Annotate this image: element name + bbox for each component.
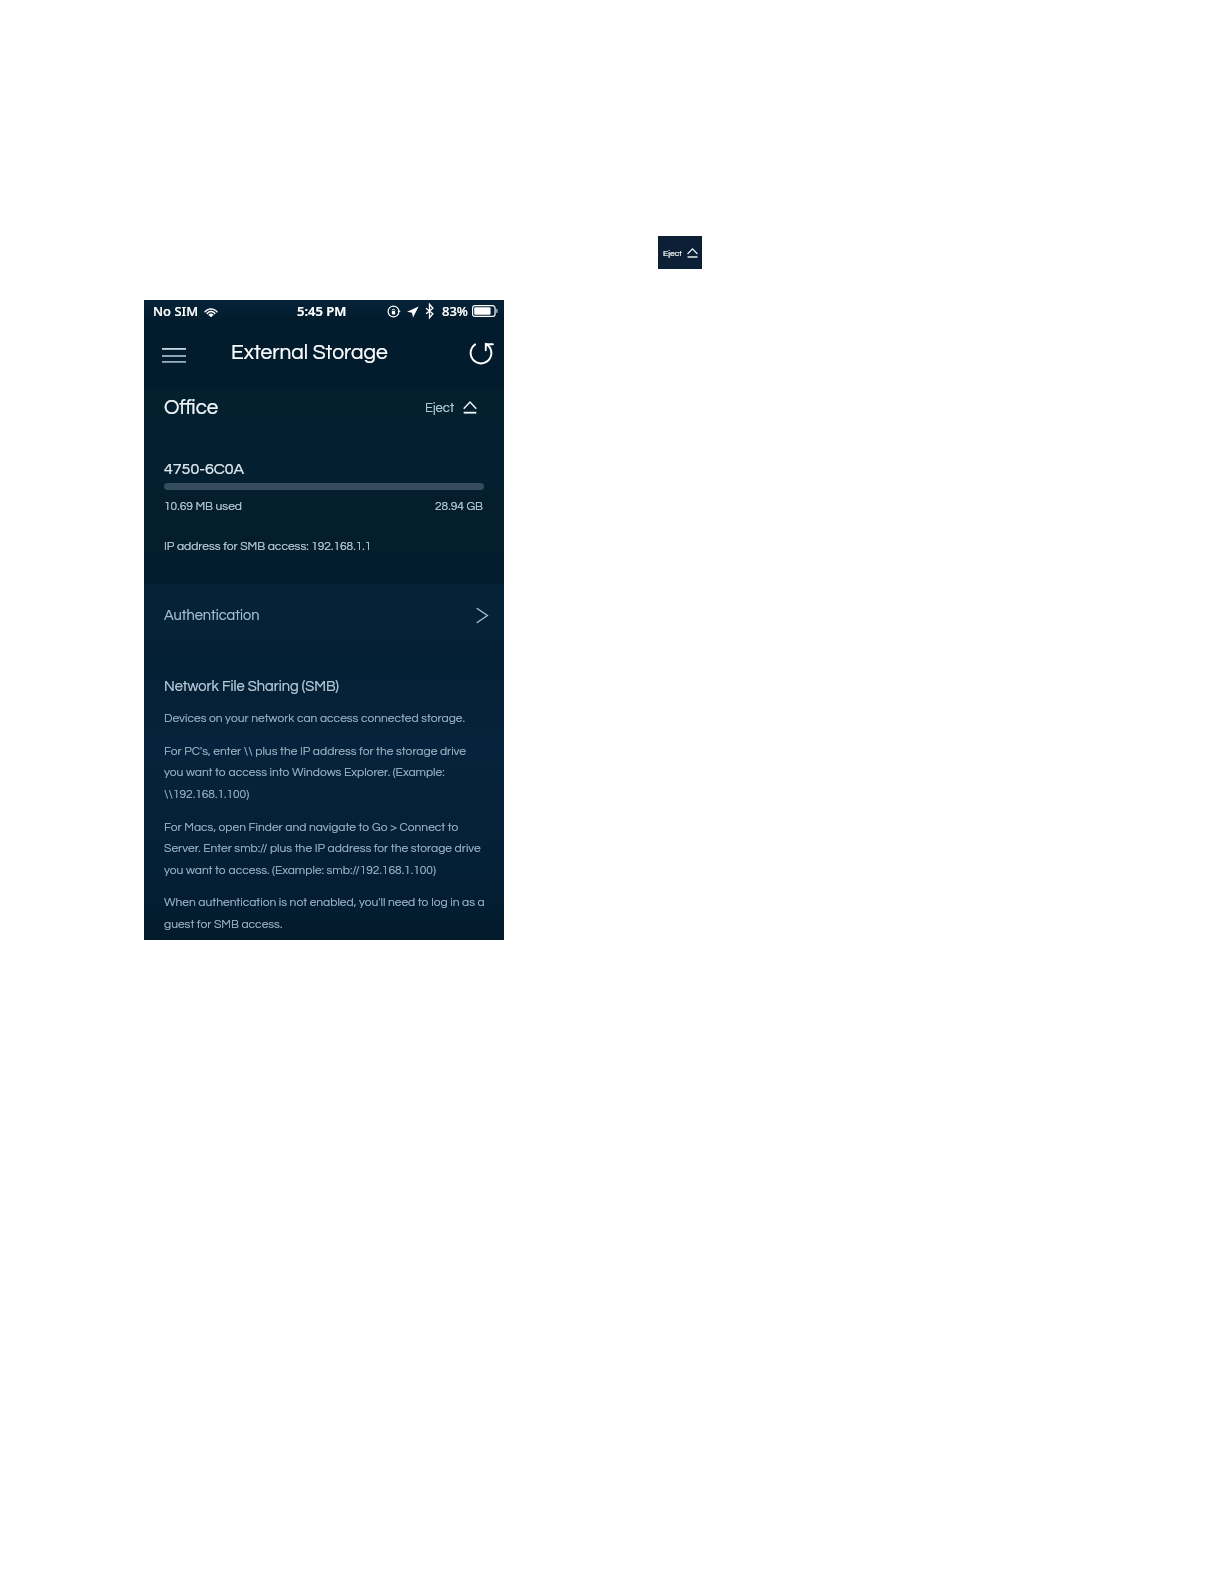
staticText: Office (164, 397, 219, 418)
staticText: 10.69 MB used (164, 500, 242, 512)
staticText: Server. Enter smb:// plus the IP address… (164, 842, 481, 854)
staticText: \\192.168.1.100) (164, 788, 250, 800)
staticText: Network File Sharing (SMB) (164, 679, 339, 694)
staticText: For Macs, open Finder and navigate to Go… (164, 821, 459, 833)
staticText: you want to access. (Example: smb://192.… (164, 864, 436, 876)
button[interactable]: Refresh (459, 331, 503, 375)
button[interactable]: Eject (658, 236, 702, 269)
staticText: 83% (442, 302, 468, 320)
staticText: IP address for SMB access: 192.168.1.1 (164, 540, 372, 552)
staticText: Devices on your network can access conne… (164, 712, 465, 724)
staticText: Eject (425, 401, 455, 414)
button[interactable]: Authentication (144, 587, 504, 644)
staticText: 4750-6C0A (164, 461, 245, 477)
staticText: you want to access into Windows Explorer… (164, 766, 445, 778)
button[interactable]: Eject (425, 401, 477, 414)
staticText: guest for SMB access. (164, 918, 283, 930)
staticText: No SIM (153, 302, 199, 320)
staticText: 28.94 GB (435, 500, 484, 512)
staticText: External Storage (231, 342, 388, 364)
staticText: 5:45 PM (297, 302, 347, 320)
staticText: When authentication is not enabled, you'… (164, 896, 485, 908)
staticText: For PC's, enter \\ plus the IP address f… (164, 745, 467, 757)
staticText: Eject (663, 249, 683, 258)
staticText: Authentication (164, 608, 260, 623)
button[interactable]: Open navigation menu (152, 333, 196, 377)
